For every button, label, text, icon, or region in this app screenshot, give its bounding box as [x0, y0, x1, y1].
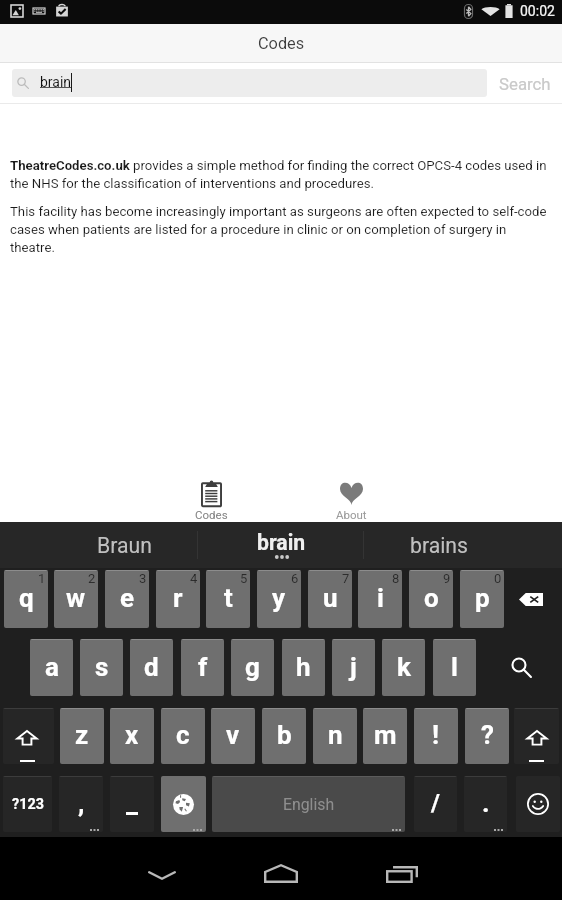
button[interactable]: brains [360, 522, 517, 568]
button[interactable]: , [59, 776, 103, 832]
button[interactable]: l [433, 639, 476, 696]
button[interactable]: n [313, 708, 357, 764]
staticText: m [374, 720, 397, 750]
button[interactable]: w [54, 570, 98, 628]
button[interactable]: / [414, 776, 457, 832]
staticText: , [78, 788, 85, 818]
staticText: p [475, 583, 490, 613]
button[interactable]: Braun [45, 522, 203, 568]
staticText: Braun [97, 533, 152, 558]
staticText: TheatreCodes.co.uk provides a simple met… [10, 158, 554, 192]
button[interactable]: Shift [3, 708, 54, 764]
staticText: English [283, 795, 335, 814]
staticText: a [45, 652, 59, 682]
button[interactable]: s [80, 639, 123, 696]
button[interactable]: p [460, 570, 504, 628]
button[interactable]: z [60, 708, 104, 764]
staticText: b [277, 720, 292, 750]
button[interactable]: t [206, 570, 250, 628]
button[interactable]: Recents [341, 837, 461, 900]
staticText: ?123 [12, 796, 44, 813]
staticText: f [198, 652, 208, 682]
staticText: z [75, 720, 89, 750]
staticText: q [19, 583, 34, 613]
staticText: r [173, 583, 183, 613]
staticText: 4 [190, 571, 198, 586]
button[interactable]: English [212, 776, 405, 832]
button[interactable]: Emoji [516, 776, 560, 832]
button[interactable]: m [363, 708, 407, 764]
button[interactable]: h [282, 639, 325, 696]
button[interactable]: f [181, 639, 224, 696]
staticText: brain [40, 74, 72, 90]
button[interactable]: b [262, 708, 306, 764]
button[interactable]: brain [12, 69, 487, 97]
button[interactable]: i [358, 570, 402, 628]
staticText: k [397, 652, 411, 682]
button[interactable]: e [105, 570, 149, 628]
staticText: About [336, 508, 367, 521]
staticText: 0 [494, 571, 502, 586]
button[interactable]: x [110, 708, 154, 764]
staticText: w [66, 583, 86, 613]
button[interactable]: brain [203, 522, 360, 568]
button[interactable]: About [282, 476, 421, 522]
staticText: t [224, 583, 233, 613]
staticText: Search [499, 74, 551, 94]
staticText: 2 [88, 571, 96, 586]
button[interactable]: r [156, 570, 200, 628]
button[interactable]: ! [414, 708, 458, 764]
button[interactable]: j [332, 639, 375, 696]
staticText: j [350, 652, 357, 682]
staticText: 8 [392, 571, 400, 586]
button[interactable]: ? [465, 708, 509, 764]
button[interactable]: y [257, 570, 301, 628]
staticText: 9 [443, 571, 451, 586]
button[interactable]: k [382, 639, 425, 696]
button[interactable]: Backspace [508, 570, 554, 628]
button[interactable]: Home [221, 837, 341, 900]
staticText: This facility has become increasingly im… [10, 204, 554, 256]
button[interactable]: u [308, 570, 352, 628]
button[interactable]: v [211, 708, 255, 764]
button[interactable]: Change language [161, 776, 206, 832]
staticText: 6 [291, 571, 299, 586]
staticText: v [226, 720, 240, 750]
staticText: Codes [195, 508, 228, 521]
staticText: e [120, 583, 135, 613]
staticText: ? [481, 720, 494, 750]
staticText: y [272, 583, 286, 613]
staticText: g [245, 652, 260, 682]
staticText: l [451, 652, 458, 682]
button[interactable]: a [30, 639, 73, 696]
button[interactable]: o [409, 570, 453, 628]
staticText: Codes [258, 34, 305, 53]
button[interactable]: Codes [142, 476, 281, 522]
button[interactable]: Hide keyboard [102, 837, 222, 900]
button[interactable]: g [231, 639, 274, 696]
button[interactable]: Shift [514, 708, 559, 764]
button[interactable]: c [161, 708, 205, 764]
button[interactable]: . [464, 776, 507, 832]
staticText: 00:02 [520, 3, 555, 19]
staticText: brain [257, 530, 306, 555]
staticText: _ [126, 787, 139, 819]
staticText: d [144, 652, 159, 682]
button[interactable]: q [4, 570, 48, 628]
staticText: / [431, 789, 440, 817]
staticText: x [125, 720, 139, 750]
button[interactable]: _ [110, 776, 154, 832]
staticText: o [424, 583, 439, 613]
button[interactable]: d [130, 639, 173, 696]
staticText: 7 [342, 571, 350, 586]
staticText: c [176, 720, 190, 750]
staticText: i [377, 583, 384, 613]
staticText: 5 [240, 571, 248, 586]
staticText: s [95, 652, 109, 682]
button[interactable]: ?123 [3, 776, 52, 832]
staticText: u [323, 583, 338, 613]
staticText: h [296, 652, 311, 682]
button[interactable]: Search [487, 63, 562, 104]
staticText: 1 [38, 571, 46, 586]
button[interactable]: Search [484, 639, 558, 696]
